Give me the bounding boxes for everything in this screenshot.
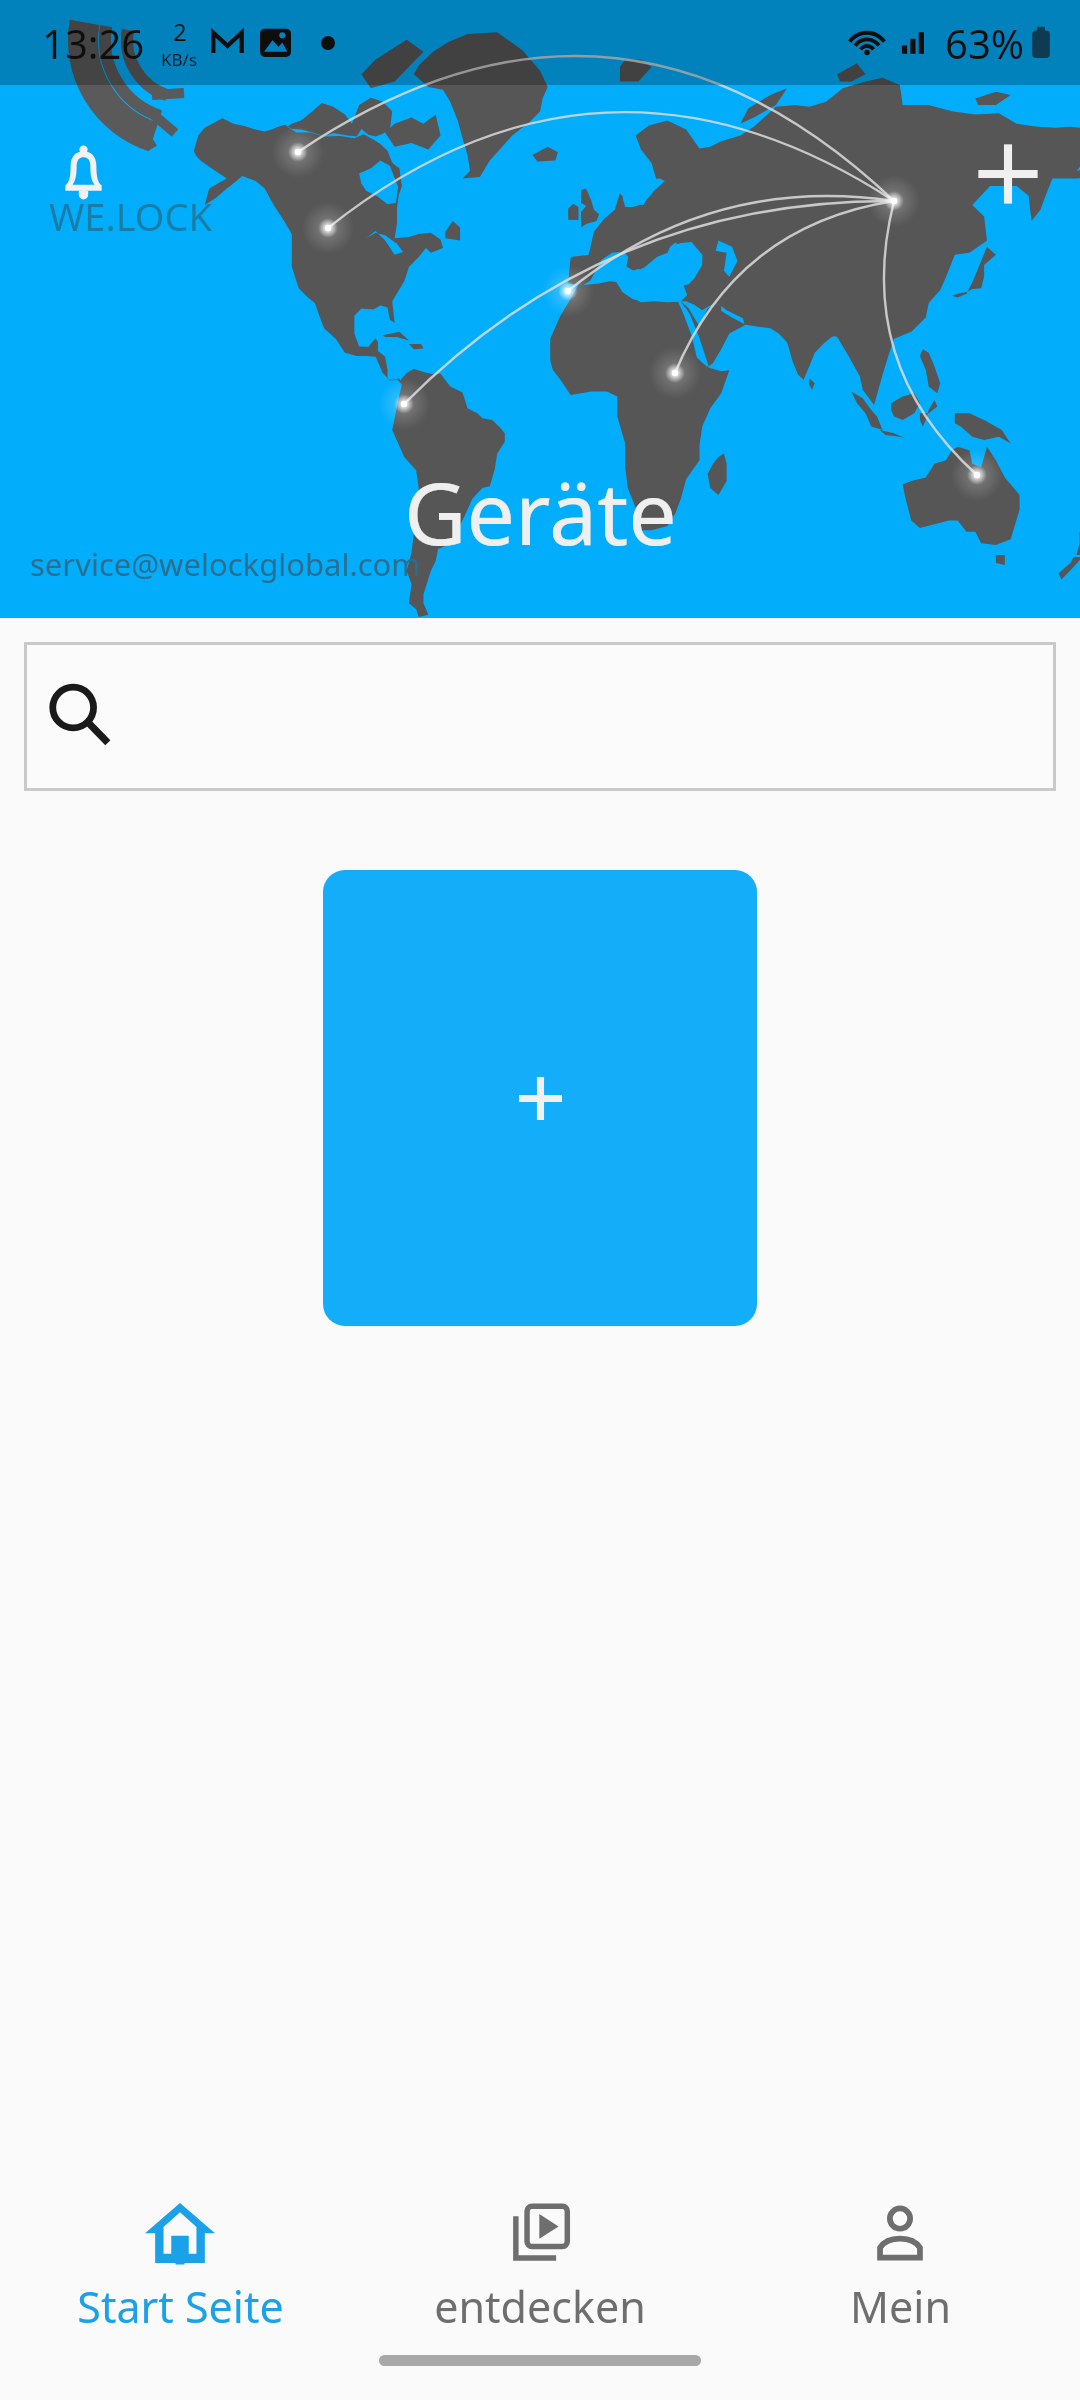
button[interactable]: Add device bbox=[323, 870, 757, 1326]
staticText: Start Seite bbox=[77, 2277, 284, 2336]
button[interactable]: Start Seite bbox=[0, 2150, 360, 2336]
staticText: WE.LOCK bbox=[49, 190, 213, 242]
button[interactable]: Search bbox=[24, 642, 1056, 791]
staticText: 13:26 bbox=[42, 16, 145, 70]
button[interactable]: entdecken bbox=[360, 2150, 720, 2336]
button[interactable]: Mein bbox=[720, 2150, 1080, 2336]
staticText: KB/s bbox=[161, 48, 198, 71]
staticText: service@welockglobal.com bbox=[30, 543, 421, 585]
staticText: entdecken bbox=[434, 2277, 646, 2336]
staticText: 63% bbox=[945, 16, 1024, 70]
staticText: Geräte bbox=[404, 453, 677, 570]
button[interactable]: Add device bbox=[956, 122, 1060, 226]
staticText: 2 bbox=[173, 15, 187, 48]
staticText: Mein bbox=[850, 2277, 951, 2336]
button[interactable]: Notifications bbox=[56, 142, 111, 203]
